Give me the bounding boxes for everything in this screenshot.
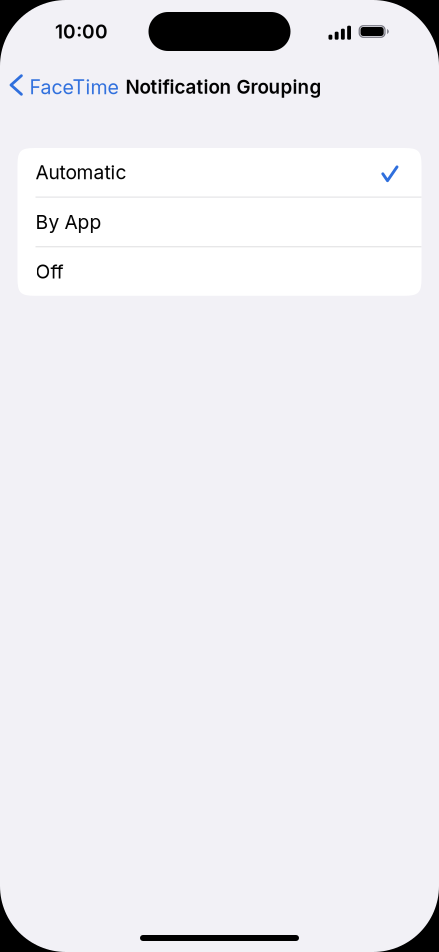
staticText: FaceTime	[29, 75, 118, 99]
button[interactable]: Automatic	[17, 148, 421, 197]
button[interactable]: FaceTime	[0, 68, 118, 106]
staticText: Off	[35, 260, 63, 283]
staticText: Notification Grouping	[125, 76, 321, 98]
button[interactable]: Off	[17, 247, 421, 296]
staticText: Automatic	[35, 161, 126, 184]
staticText: By App	[35, 210, 101, 233]
staticText: 10:00	[55, 20, 108, 43]
button[interactable]: By App	[17, 198, 421, 246]
